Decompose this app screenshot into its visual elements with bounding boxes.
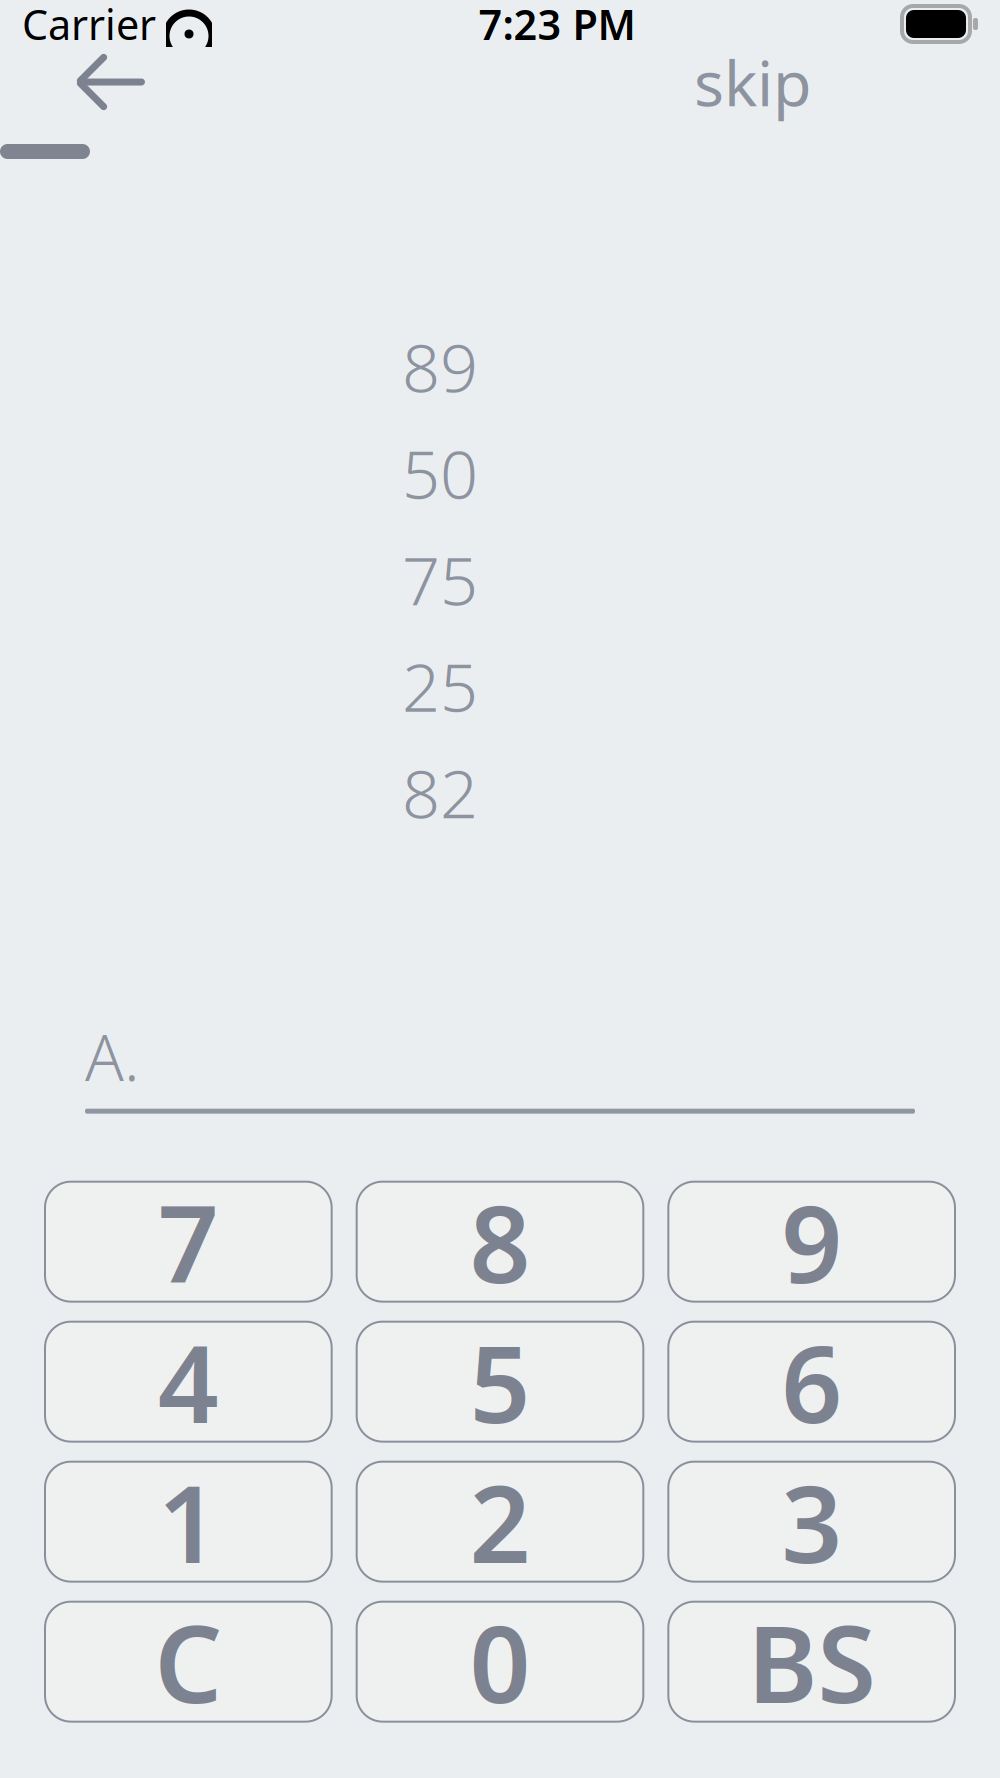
button[interactable]: 1 — [45, 1462, 332, 1582]
button[interactable]: Back — [48, 48, 168, 116]
staticText: 89 — [402, 322, 478, 410]
button[interactable]: C — [45, 1602, 332, 1722]
button[interactable]: 2 — [357, 1462, 643, 1582]
staticText: 6 — [781, 1311, 842, 1452]
button[interactable]: 0 — [357, 1602, 643, 1722]
button[interactable]: 9 — [668, 1182, 955, 1302]
staticText: 9 — [781, 1171, 842, 1312]
button[interactable]: 6 — [668, 1322, 955, 1442]
staticText: 3 — [781, 1451, 842, 1592]
staticText: 2 — [469, 1451, 530, 1592]
staticText: A. — [85, 1014, 140, 1099]
button[interactable]: skip — [676, 48, 830, 116]
staticText: 25 — [402, 642, 478, 730]
button[interactable]: 4 — [45, 1322, 332, 1442]
staticText: 7 — [158, 1171, 219, 1312]
button[interactable]: 5 — [357, 1322, 643, 1442]
staticText: Carrier — [22, 0, 156, 51]
staticText: C — [154, 1591, 222, 1732]
button[interactable]: 3 — [668, 1462, 955, 1582]
staticText: skip — [694, 40, 812, 124]
staticText: 75 — [402, 535, 478, 624]
button[interactable]: BS — [668, 1602, 955, 1722]
staticText: 7:23 PM — [478, 0, 635, 51]
staticText: 50 — [402, 428, 478, 517]
staticText: 4 — [158, 1311, 219, 1452]
button[interactable]: 8 — [357, 1182, 643, 1302]
staticText: 5 — [469, 1311, 530, 1452]
staticText: 82 — [402, 748, 478, 837]
staticText: 8 — [469, 1171, 530, 1312]
staticText: BS — [747, 1591, 876, 1732]
staticText: 0 — [469, 1591, 530, 1732]
button[interactable]: 7 — [45, 1182, 332, 1302]
staticText: 1 — [158, 1451, 219, 1592]
